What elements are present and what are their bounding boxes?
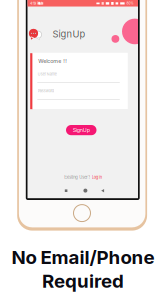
- staticText: Welcome !!: [38, 58, 67, 64]
- staticText: User Name: [38, 72, 57, 76]
- staticText: Login: [92, 175, 102, 180]
- staticText: SignUp: [52, 28, 85, 40]
- staticText: 4:19 PM: [30, 1, 42, 6]
- staticText: SignUp: [73, 127, 90, 133]
- staticText: No Email/Phone: [11, 246, 154, 269]
- staticText: 80%: [127, 1, 134, 5]
- button[interactable]: SignUp: [66, 125, 96, 135]
- staticText: Required: [42, 270, 124, 292]
- button[interactable]: Existing User?: [52, 174, 114, 180]
- staticText: Existing User?: [64, 175, 90, 180]
- staticText: Password: [38, 88, 54, 93]
